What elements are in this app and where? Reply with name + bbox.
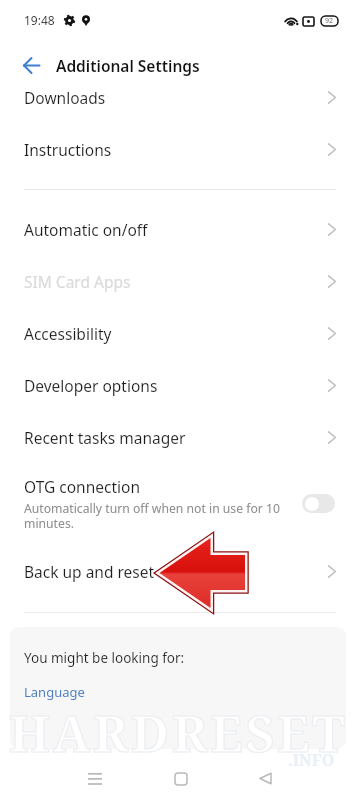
staticText: Additional Settings [56, 55, 200, 76]
staticText: Downloads [24, 87, 328, 108]
staticText: HARDRESET [9, 699, 348, 767]
button[interactable]: Developer options [0, 359, 360, 411]
staticText: HARDRESET [9, 699, 348, 767]
button[interactable]: Language [24, 683, 85, 701]
button[interactable]: Instructions [0, 123, 360, 175]
button[interactable]: Recent apps [72, 756, 117, 800]
button[interactable]: OTG connection [0, 464, 360, 546]
staticText: Recent tasks manager [24, 427, 328, 448]
staticText: SIM Card Apps [24, 271, 328, 292]
staticText: Accessibility [24, 323, 328, 344]
button[interactable]: Automatic on/off [0, 203, 360, 255]
staticText: .INFO [288, 749, 335, 771]
button[interactable]: Accessibility [0, 307, 360, 359]
button[interactable]: OTG connection toggle [302, 494, 335, 513]
staticText: 92 [325, 16, 334, 26]
staticText: 19:48 [24, 12, 55, 28]
staticText: Developer options [24, 375, 328, 396]
staticText: Instructions [24, 139, 328, 160]
staticText: Automatically turn off when not in use f… [24, 500, 286, 531]
staticText: You might be looking for: [24, 649, 185, 667]
button[interactable]: SIM Card Apps [0, 255, 360, 307]
button[interactable]: Downloads [0, 71, 360, 123]
staticText: OTG connection [24, 476, 140, 497]
button[interactable]: Home [158, 756, 203, 800]
button[interactable]: Recent tasks manager [0, 411, 360, 463]
button[interactable]: Back up and reset [0, 545, 360, 597]
button[interactable]: Back [243, 756, 288, 800]
staticText: Back up and reset [24, 561, 328, 582]
button[interactable]: Back [16, 50, 48, 82]
staticText: Automatic on/off [24, 219, 328, 240]
